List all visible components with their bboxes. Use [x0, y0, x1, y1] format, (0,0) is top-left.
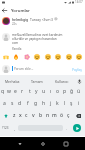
staticText: f [27, 100, 29, 107]
button[interactable]: Backspace [72, 110, 84, 121]
button[interactable]: b [37, 110, 44, 121]
staticText: j [50, 100, 52, 107]
button[interactable]: d [16, 98, 24, 109]
button[interactable]: c [23, 110, 30, 121]
staticText: 😍 [54, 17, 58, 21]
staticText: p [63, 88, 67, 95]
staticText: t [29, 88, 31, 95]
staticText: a [3, 100, 6, 107]
staticText: ö [60, 112, 64, 119]
button[interactable]: h [40, 98, 47, 109]
staticText: o [56, 88, 60, 95]
staticText: d [18, 100, 22, 107]
button[interactable]: helmikgig [2, 17, 83, 26]
staticText: 22s [12, 22, 17, 26]
button[interactable]: t [26, 86, 33, 97]
staticText: i [78, 100, 80, 107]
button[interactable]: a [0, 98, 8, 109]
button[interactable]: Yorum ekle... [14, 67, 71, 71]
button[interactable]: w [6, 86, 12, 97]
staticText: g [34, 100, 38, 107]
button[interactable]: mefLuzeli0zmudinoı evet kardesim ollurtk… [2, 33, 83, 51]
button[interactable]: v [30, 110, 37, 121]
button[interactable]: Emoji reaction [23, 53, 31, 61]
button[interactable]: Emoji reaction [2, 53, 10, 61]
staticText: v [32, 112, 35, 119]
button[interactable]: Kullanıcı [49, 75, 74, 88]
staticText: c [25, 112, 28, 119]
button[interactable]: ğ [68, 86, 75, 97]
button[interactable]: z [11, 110, 17, 121]
staticText: w [7, 88, 11, 95]
button[interactable]: Shift [0, 110, 11, 121]
button[interactable]: ç [65, 110, 72, 121]
staticText: helmikgig [12, 17, 29, 21]
button[interactable]: p [61, 86, 68, 97]
staticText: Yorumlar [11, 8, 30, 14]
button[interactable]: Tamam [24, 75, 49, 88]
button[interactable]: Emoji reaction [54, 53, 62, 61]
button[interactable]: Send [73, 124, 81, 132]
staticText: Yorum ekle... [14, 67, 34, 71]
button[interactable]: j [47, 98, 54, 109]
button[interactable]: o [54, 86, 61, 97]
button[interactable]: Recents [61, 139, 70, 148]
button[interactable]: Symbols [0, 122, 11, 134]
staticText: Kullanıcı [55, 79, 69, 84]
staticText: e [14, 88, 17, 95]
button[interactable]: f [24, 98, 32, 109]
button[interactable]: Comma [11, 122, 18, 134]
button[interactable]: Home [38, 139, 47, 148]
staticText: ğ [70, 88, 74, 95]
button[interactable]: n [44, 110, 51, 121]
staticText: ?123 [2, 126, 9, 130]
button[interactable]: r [19, 86, 26, 97]
button[interactable]: Merhaba [0, 75, 24, 88]
button[interactable]: i [75, 98, 82, 109]
staticText: h [42, 100, 46, 107]
button[interactable]: x [17, 110, 23, 121]
button[interactable]: ş [68, 98, 75, 109]
staticText: ç [67, 112, 70, 119]
staticText: y [35, 88, 38, 95]
staticText: Yanıtla [12, 47, 22, 51]
staticText: ı [50, 88, 52, 95]
button[interactable]: e [12, 86, 19, 97]
button[interactable]: Emoji reaction [33, 53, 41, 61]
button[interactable]: k [54, 98, 61, 109]
staticText: . [66, 126, 67, 131]
button[interactable]: Back [15, 139, 24, 148]
button[interactable]: q [0, 86, 6, 97]
button[interactable]: y [33, 86, 40, 97]
staticText: Tamam [31, 79, 43, 84]
button[interactable]: ö [58, 110, 65, 121]
button[interactable]: l [61, 98, 68, 109]
button[interactable]: Voice input [74, 75, 85, 88]
button[interactable]: Emoji reaction [44, 53, 52, 61]
staticText: Paylaş [72, 68, 82, 72]
button[interactable]: ü [75, 86, 82, 97]
staticText: u [42, 88, 46, 95]
button[interactable]: Emoji reaction [75, 53, 83, 61]
button[interactable]: u [40, 86, 47, 97]
button[interactable]: Back [0, 6, 9, 15]
button[interactable]: Emoji reaction [65, 53, 73, 61]
button[interactable]: s [8, 98, 16, 109]
staticText: r [21, 88, 24, 95]
staticText: mefLuzeli0zmudinoı evet kardesim ollurtk… [12, 33, 63, 45]
button[interactable]: m [51, 110, 58, 121]
staticText: k [56, 100, 59, 107]
staticText: b [39, 112, 43, 119]
button[interactable]: Emoji reaction [12, 53, 20, 61]
staticText: x [19, 112, 22, 119]
button[interactable]: ı [47, 86, 54, 97]
staticText: , [14, 126, 15, 131]
staticText: l [64, 100, 66, 107]
button[interactable]: Paylaş [71, 68, 83, 72]
staticText: ş [70, 100, 73, 107]
staticText: ü [77, 88, 81, 95]
staticText: Tuncay <3ve<3 [30, 17, 53, 21]
button[interactable]: g [32, 98, 40, 109]
